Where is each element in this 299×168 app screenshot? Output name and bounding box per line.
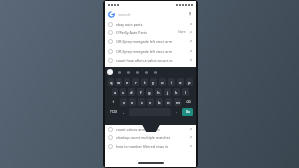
staticText: Off-Ejeep renegade left visor arm [116, 49, 188, 54]
button[interactable]: Gboard menu [107, 69, 113, 75]
button[interactable]: z [120, 98, 127, 106]
button[interactable]: m [174, 98, 181, 106]
button[interactable]: h [155, 88, 162, 96]
staticText: x [131, 100, 134, 105]
staticText: o [179, 80, 182, 85]
button[interactable]: y [150, 78, 157, 86]
staticText: e [126, 80, 129, 85]
button[interactable]: v [147, 98, 154, 106]
staticText: q [110, 80, 113, 85]
staticText: d [130, 90, 133, 95]
staticText: count values and columns [116, 127, 188, 132]
button[interactable]: Period [173, 108, 180, 116]
button[interactable]: how to number filtered rows in [108, 141, 193, 152]
button[interactable]: vlookup count multiple matches [108, 133, 193, 141]
button[interactable]: u [159, 78, 166, 86]
button[interactable]: q [108, 78, 114, 86]
staticText: search [118, 12, 131, 17]
staticText: p [188, 80, 191, 85]
button[interactable]: e [124, 78, 130, 86]
button[interactable]: Comma [120, 108, 127, 116]
button[interactable]: Tool 0 [117, 70, 122, 75]
button[interactable]: a [112, 88, 118, 96]
staticText: ebay auto parts [116, 22, 188, 27]
staticText: l [185, 90, 187, 95]
staticText: h [157, 90, 160, 95]
button[interactable]: k [173, 88, 180, 96]
staticText: m [176, 100, 180, 105]
button[interactable]: Symbols [108, 108, 118, 116]
staticText: u [161, 80, 164, 85]
staticText: w [117, 80, 121, 85]
staticText: Off-Ejeep renegade left visor arm [116, 39, 188, 44]
staticText: t [144, 80, 146, 85]
button[interactable]: n [165, 98, 172, 106]
button[interactable]: count values and columns [108, 125, 193, 133]
button[interactable]: t [141, 78, 148, 86]
staticText: how to number filtered rows in [116, 144, 188, 149]
staticText: j [167, 90, 169, 95]
button[interactable]: b [156, 98, 163, 106]
staticText: g [148, 90, 151, 95]
button[interactable]: p [186, 78, 193, 86]
staticText: vlookup count multiple matches [116, 135, 188, 140]
button[interactable]: Off-Ejeep renegade left visor arm [108, 47, 193, 55]
button[interactable]: Tool 2 [135, 70, 140, 75]
button[interactable]: Voice search [187, 11, 193, 17]
staticText: v [149, 100, 152, 105]
button[interactable]: count how often a value occurs in [108, 55, 193, 66]
button[interactable]: j [164, 88, 171, 96]
button[interactable]: O'Reilly Auto Parts [108, 28, 193, 36]
button[interactable]: Google [108, 11, 115, 18]
button[interactable]: ebay auto parts [108, 20, 193, 28]
staticText: Store [178, 30, 186, 34]
button[interactable]: r [132, 78, 139, 86]
button[interactable]: s [120, 88, 126, 96]
button[interactable]: Search [182, 108, 193, 116]
button[interactable]: d [128, 88, 135, 96]
button[interactable]: f [137, 88, 144, 96]
staticText: f [140, 90, 142, 95]
staticText: Go [186, 110, 190, 114]
button[interactable]: x [129, 98, 136, 106]
staticText: ?123 [110, 110, 117, 114]
staticText: s [122, 90, 124, 95]
staticText: c [141, 100, 143, 105]
button[interactable]: Shift [108, 98, 118, 106]
staticText: ⇧ [112, 100, 115, 104]
staticText: count how often a value occurs in [116, 58, 188, 63]
button[interactable]: Backspace [183, 98, 193, 106]
staticText: b [158, 100, 161, 105]
staticText: ⌫ [186, 100, 191, 104]
staticText: r [135, 80, 137, 85]
staticText: O'Reilly Auto Parts [116, 30, 178, 35]
staticText: n [167, 100, 170, 105]
button[interactable]: Tool 1 [126, 70, 131, 75]
button[interactable]: c [138, 98, 145, 106]
staticText: , [123, 110, 124, 114]
button[interactable]: Tool 3 [144, 70, 149, 75]
button[interactable]: search [118, 10, 187, 18]
button[interactable]: Off-Ejeep renegade left visor arm [108, 36, 193, 47]
staticText: i [171, 80, 173, 85]
button[interactable]: g [146, 88, 153, 96]
staticText: z [123, 100, 125, 105]
staticText: y [152, 80, 155, 85]
staticText: a [114, 90, 117, 95]
button[interactable]: o [177, 78, 184, 86]
staticText: . [176, 110, 177, 114]
button[interactable]: i [168, 78, 175, 86]
button[interactable]: Tool 4 [153, 70, 158, 75]
button[interactable]: l [182, 88, 189, 96]
staticText: k [175, 90, 178, 95]
button[interactable]: w [116, 78, 122, 86]
